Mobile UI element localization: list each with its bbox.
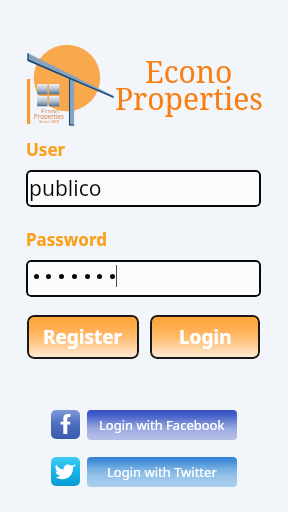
button[interactable]: Login	[150, 315, 260, 359]
staticText: Login with Facebook	[99, 416, 225, 434]
staticText: Password	[26, 228, 107, 251]
staticText: publico	[29, 174, 102, 203]
staticText: Properties	[115, 78, 263, 119]
staticText: Login with Twitter	[107, 463, 217, 481]
button[interactable]: Login with Twitter	[87, 457, 237, 487]
staticText: Econo	[145, 51, 233, 92]
staticText: Properties	[34, 112, 65, 119]
staticText: User	[26, 138, 66, 161]
staticText: Since 2001	[39, 119, 61, 124]
button[interactable]: Register	[27, 315, 139, 359]
button[interactable]: Login with Facebook	[51, 410, 80, 439]
staticText: Econo	[41, 107, 59, 113]
button[interactable]	[26, 260, 261, 297]
staticText: Login	[179, 324, 232, 350]
button[interactable]: publico	[26, 170, 261, 207]
button[interactable]: Login with Facebook	[87, 410, 237, 440]
staticText: Register	[43, 324, 123, 350]
button[interactable]: Login with Twitter	[51, 457, 80, 486]
